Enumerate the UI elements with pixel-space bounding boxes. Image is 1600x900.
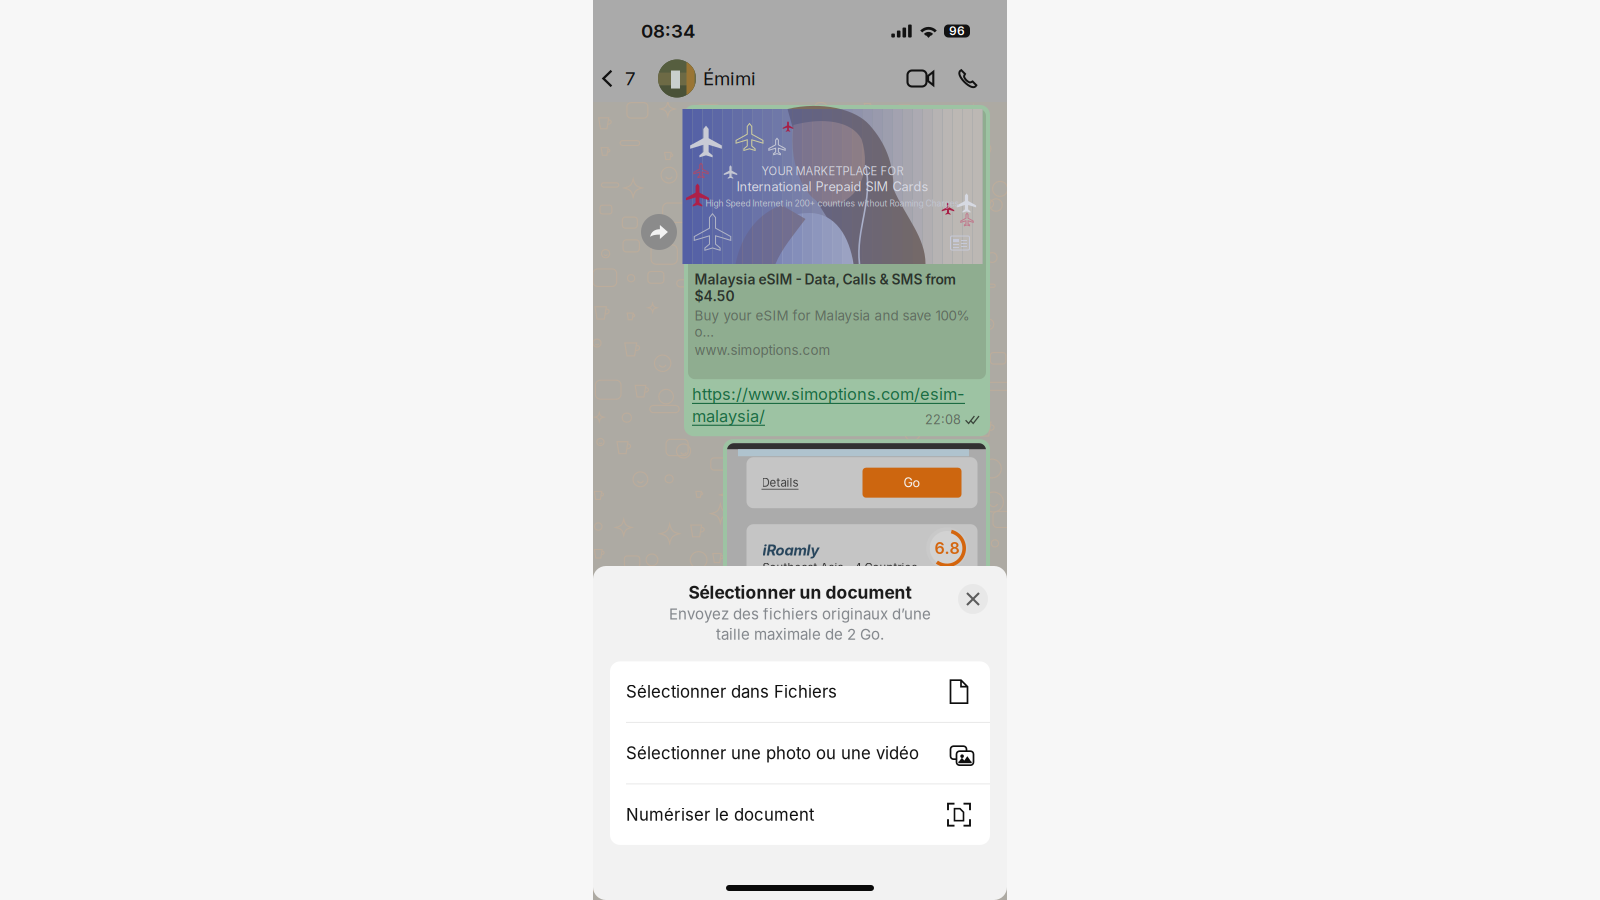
staticText: YOUR MARKETPLACE FOR: [761, 164, 903, 178]
staticText: Numériser le document: [626, 805, 814, 825]
staticText: Southeast Asia - 4 Countries: [762, 561, 917, 574]
button[interactable]: Voice call: [947, 55, 989, 102]
staticText: Envoyez des fichiers originaux d’une: [669, 605, 931, 623]
staticText: International Prepaid SIM Cards: [736, 179, 928, 194]
staticText: https://www.simoptions.com/esim-: [692, 384, 965, 404]
button[interactable]: Sélectionner dans Fichiers: [610, 661, 990, 722]
staticText: 96: [949, 24, 965, 38]
button[interactable]: Forward: [641, 214, 677, 250]
staticText: malaysia/: [692, 406, 765, 426]
staticText: 7: [625, 67, 636, 90]
staticText: Sélectionner dans Fichiers: [626, 682, 837, 702]
staticText: High Speed Internet in 200+ countries wi…: [705, 198, 959, 209]
staticText: iRoamly: [762, 541, 819, 559]
button[interactable]: Émimi: [658, 55, 756, 102]
staticText: 6.8: [934, 538, 959, 558]
staticText: Buy your eSIM for Malaysia and save 100%…: [694, 308, 969, 340]
button[interactable]: Video call: [894, 55, 940, 102]
button[interactable]: Sélectionner une photo ou une vidéo: [610, 723, 990, 783]
staticText: Details: [761, 476, 798, 490]
staticText: Go: [903, 475, 920, 490]
staticText: Sélectionner un document: [688, 582, 911, 603]
staticText: 08:34: [641, 20, 695, 42]
staticText: Malaysia eSIM - Data, Calls & SMS from: [694, 271, 955, 288]
staticText: Émimi: [703, 67, 756, 90]
staticText: www.simoptions.com: [694, 342, 830, 358]
staticText: taille maximale de 2 Go.: [716, 625, 884, 643]
button[interactable]: 7: [593, 55, 640, 102]
button[interactable]: Close: [958, 584, 988, 614]
staticText: $4.50: [694, 288, 734, 305]
staticText: 22:08: [925, 412, 961, 427]
button[interactable]: Numériser le document: [610, 784, 990, 845]
staticText: Sélectionner une photo ou une vidéo: [626, 743, 919, 763]
